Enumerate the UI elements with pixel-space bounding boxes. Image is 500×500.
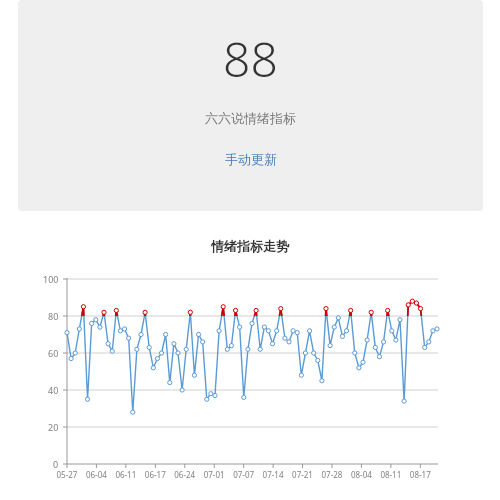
staticText: 手动更新 — [225, 151, 277, 167]
staticText: 情绪指标走势 — [211, 238, 289, 254]
staticText: 六六说情绪指标 — [205, 110, 296, 126]
button[interactable]: 手动更新 — [217, 148, 285, 170]
staticText: 88 — [223, 26, 278, 91]
other: 情绪指标走势折线图 — [0, 0, 500, 500]
